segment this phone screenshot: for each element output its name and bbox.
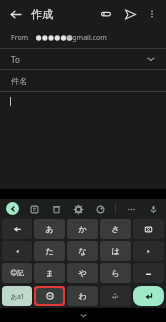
button[interactable]: ま	[34, 263, 65, 283]
staticText: た	[45, 246, 54, 256]
staticText: 件名	[11, 76, 27, 86]
button[interactable]: Key	[2, 219, 32, 239]
button[interactable]: Key	[133, 263, 164, 283]
button[interactable]: あ	[34, 219, 65, 239]
button[interactable]: Expand toolbar	[6, 202, 19, 215]
button[interactable]: Key	[133, 219, 164, 239]
button[interactable]: More options	[143, 5, 161, 23]
button[interactable]	[0, 92, 166, 189]
button[interactable]: Delete	[49, 202, 63, 216]
button[interactable]: Settings	[71, 202, 85, 216]
staticText: か	[78, 224, 87, 234]
staticText: わ	[78, 291, 87, 301]
staticText: さ	[111, 224, 120, 234]
button[interactable]: Key	[2, 241, 32, 261]
staticText: To	[11, 54, 20, 65]
button[interactable]: わ	[67, 286, 98, 306]
staticText: From	[11, 33, 29, 43]
staticText: や	[78, 268, 87, 278]
button[interactable]: Back	[5, 4, 25, 24]
button[interactable]: や	[67, 263, 98, 283]
staticText: ま	[45, 268, 54, 278]
staticText: あa1	[10, 292, 25, 301]
button[interactable]: Voice input	[146, 202, 160, 216]
button[interactable]: Emoji	[36, 288, 63, 304]
button[interactable]: Key	[100, 286, 131, 306]
button[interactable]: Attach file	[97, 5, 115, 23]
button[interactable]: From	[0, 28, 166, 48]
button[interactable]: Stickers	[93, 202, 107, 216]
button[interactable]: Hide keyboard	[76, 308, 90, 322]
staticText: あ	[45, 224, 54, 234]
staticText: な	[78, 246, 87, 256]
button[interactable]: Key	[133, 241, 164, 261]
staticText: 作成	[31, 7, 53, 21]
button[interactable]: さ	[100, 219, 131, 239]
button[interactable]: Enter	[133, 286, 164, 306]
button[interactable]: Send	[121, 5, 139, 23]
staticText: は	[111, 246, 120, 256]
button[interactable]: To	[0, 49, 166, 69]
button[interactable]: More	[124, 202, 138, 216]
button[interactable]: Clipboard	[27, 202, 41, 216]
button[interactable]: か	[67, 219, 98, 239]
button[interactable]: 件名	[0, 70, 166, 91]
staticText: ら	[111, 268, 120, 278]
button[interactable]: ら	[100, 263, 131, 283]
button[interactable]: ☺記	[2, 263, 32, 283]
button[interactable]: あa1	[2, 286, 32, 306]
button[interactable]: な	[67, 241, 98, 261]
button[interactable]: は	[100, 241, 131, 261]
staticText: ☺記	[10, 269, 24, 277]
staticText: @gmail.com	[66, 33, 107, 43]
button[interactable]: た	[34, 241, 65, 261]
